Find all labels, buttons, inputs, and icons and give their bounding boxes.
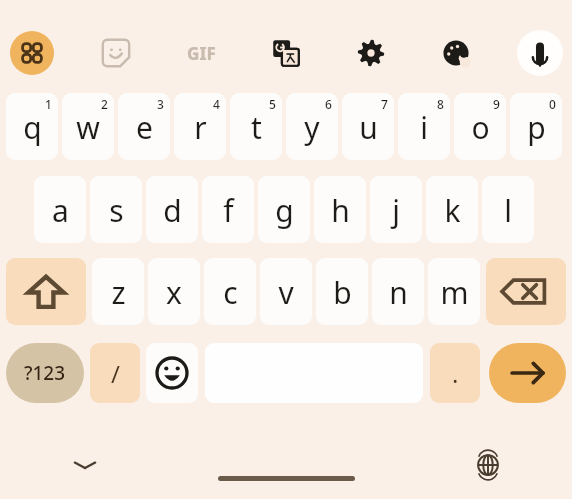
staticText: 8: [437, 96, 444, 112]
staticText: y: [304, 107, 320, 148]
staticText: t: [251, 107, 262, 148]
staticText: 1: [45, 96, 52, 112]
button[interactable]: Hide keyboard: [70, 450, 100, 480]
staticText: o: [471, 107, 490, 148]
staticText: r: [194, 107, 207, 148]
staticText: k: [444, 190, 461, 231]
button[interactable]: Voice input: [517, 30, 563, 76]
button[interactable]: k: [426, 176, 478, 243]
button[interactable]: n: [372, 258, 424, 325]
button[interactable]: Stickers: [94, 31, 138, 75]
button[interactable]: Enter: [489, 343, 566, 403]
staticText: p: [527, 107, 546, 148]
staticText: m: [440, 272, 469, 313]
staticText: .: [452, 357, 459, 390]
staticText: d: [163, 190, 182, 231]
staticText: b: [333, 272, 352, 313]
button[interactable]: r: [174, 93, 226, 160]
staticText: h: [331, 190, 350, 231]
staticText: u: [359, 107, 378, 148]
staticText: 6: [325, 96, 332, 112]
button[interactable]: t: [230, 93, 282, 160]
button[interactable]: j: [370, 176, 422, 243]
button[interactable]: ?123: [6, 343, 84, 403]
button[interactable]: l: [482, 176, 534, 243]
button[interactable]: y: [286, 93, 338, 160]
button[interactable]: Translate: [264, 31, 308, 75]
staticText: q: [23, 107, 42, 148]
button[interactable]: u: [342, 93, 394, 160]
button[interactable]: q: [6, 93, 58, 160]
staticText: 2: [101, 96, 108, 112]
staticText: 3: [157, 96, 164, 112]
staticText: z: [111, 272, 126, 313]
staticText: 4: [213, 96, 220, 112]
button[interactable]: Settings: [349, 31, 393, 75]
button[interactable]: b: [316, 258, 368, 325]
button[interactable]: o: [454, 93, 506, 160]
button[interactable]: z: [92, 258, 144, 325]
button[interactable]: c: [204, 258, 256, 325]
button[interactable]: Emoji: [146, 343, 198, 403]
staticText: 7: [381, 96, 388, 112]
staticText: s: [109, 190, 124, 231]
staticText: n: [389, 272, 408, 313]
button[interactable]: Shift: [6, 258, 86, 325]
staticText: c: [223, 272, 238, 313]
button[interactable]: m: [428, 258, 480, 325]
staticText: g: [275, 190, 294, 231]
staticText: i: [420, 107, 428, 148]
button[interactable]: e: [118, 93, 170, 160]
button[interactable]: i: [398, 93, 450, 160]
button[interactable]: a: [34, 176, 86, 243]
staticText: 9: [493, 96, 500, 112]
button[interactable]: h: [314, 176, 366, 243]
button[interactable]: p: [510, 93, 562, 160]
button[interactable]: Change language: [473, 450, 503, 480]
staticText: 0: [549, 96, 556, 112]
button[interactable]: Theme: [434, 31, 478, 75]
button[interactable]: f: [202, 176, 254, 243]
button[interactable]: GIF: [176, 36, 226, 70]
button[interactable]: x: [148, 258, 200, 325]
staticText: GIF: [187, 42, 216, 65]
button[interactable]: s: [90, 176, 142, 243]
button[interactable]: .: [430, 343, 480, 403]
staticText: v: [278, 272, 294, 313]
button[interactable]: g: [258, 176, 310, 243]
staticText: x: [166, 272, 182, 313]
button[interactable]: /: [90, 343, 140, 403]
staticText: w: [76, 107, 100, 148]
button[interactable]: v: [260, 258, 312, 325]
button[interactable]: d: [146, 176, 198, 243]
button[interactable]: Keyboard modes: [10, 31, 54, 75]
staticText: f: [223, 190, 234, 231]
staticText: j: [392, 190, 400, 231]
button[interactable]: Backspace: [486, 258, 566, 325]
staticText: e: [136, 107, 153, 148]
staticText: 5: [269, 96, 276, 112]
staticText: l: [504, 190, 512, 231]
staticText: /: [111, 357, 120, 390]
staticText: ?123: [24, 360, 66, 386]
button[interactable]: w: [62, 93, 114, 160]
staticText: a: [52, 190, 69, 231]
